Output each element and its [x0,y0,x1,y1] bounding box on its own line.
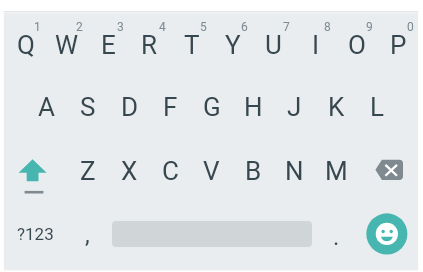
button[interactable]: C [150,150,191,192]
button[interactable]: ?123 [4,216,66,252]
button[interactable]: Q [5,24,46,66]
button[interactable]: Shift [4,150,66,200]
staticText: R [141,30,158,60]
staticText: 4 [159,20,166,34]
button[interactable]: J [274,86,315,128]
staticText: L [370,92,385,122]
staticText: F [163,92,178,122]
staticText: , [85,221,90,249]
staticText: X [121,156,138,186]
staticText: C [162,156,179,186]
staticText: . [333,223,340,251]
staticText: W [55,30,79,60]
staticText: ?123 [17,224,54,244]
staticText: S [80,92,96,122]
button[interactable]: F [150,86,191,128]
button[interactable]: G [191,86,232,128]
staticText: P [390,30,407,60]
staticText: B [245,156,262,186]
staticText: 0 [407,20,414,34]
staticText: 5 [200,20,207,34]
staticText: G [203,92,221,122]
staticText: 7 [283,20,290,34]
button[interactable]: . [316,216,357,258]
button[interactable]: X [109,150,150,192]
button[interactable]: K [316,86,357,128]
staticText: H [244,92,263,122]
staticText: 6 [241,20,248,34]
staticText: N [285,156,304,186]
staticText: Z [80,156,96,186]
button[interactable]: , [67,214,108,256]
button[interactable]: V [191,150,232,192]
button[interactable]: Y [212,24,253,66]
staticText: E [101,30,116,60]
button[interactable]: T [171,24,212,66]
staticText: Y [225,30,241,60]
button[interactable]: H [233,86,274,128]
staticText: U [265,30,282,60]
button[interactable]: A [26,86,67,128]
button[interactable]: M [316,150,357,192]
staticText: J [287,92,302,122]
button[interactable]: Emoji [345,205,407,259]
button[interactable]: L [357,86,398,128]
button[interactable]: U [253,24,294,66]
staticText: 8 [324,20,331,34]
staticText: 2 [76,20,83,34]
staticText: O [348,30,366,60]
button[interactable]: Backspace [356,150,418,192]
staticText: V [203,156,220,186]
button[interactable]: I [295,24,336,66]
staticText: 9 [366,20,373,34]
button[interactable]: P [378,24,419,66]
staticText: A [38,92,55,122]
button[interactable]: R [129,24,170,66]
staticText: T [184,30,200,60]
button[interactable]: B [233,150,274,192]
button[interactable]: E [88,24,129,66]
staticText: 3 [117,20,124,34]
button[interactable]: S [67,86,108,128]
button[interactable]: D [109,86,150,128]
staticText: Q [17,30,35,60]
button[interactable]: O [336,24,377,66]
button[interactable]: Z [67,150,108,192]
staticText: D [121,92,139,122]
staticText: K [328,92,345,122]
staticText: 1 [34,20,41,34]
staticText: I [312,30,320,60]
button[interactable]: N [274,150,315,192]
button[interactable]: W [46,24,87,66]
staticText: M [325,156,348,186]
